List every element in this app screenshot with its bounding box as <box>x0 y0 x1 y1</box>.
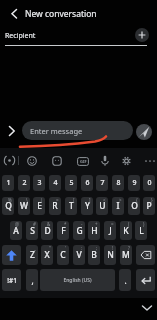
button[interactable]: C <box>57 245 69 265</box>
staticText: ] <box>89 197 91 203</box>
button[interactable] <box>136 124 152 140</box>
staticText: N <box>107 249 114 261</box>
button[interactable]: Enter message <box>22 121 133 140</box>
staticText: Enter message <box>30 126 83 136</box>
button[interactable]: Z <box>26 245 38 265</box>
button[interactable]: !#1 <box>2 269 21 291</box>
staticText: A <box>13 225 19 237</box>
button[interactable]: K <box>120 221 132 240</box>
staticText: W <box>20 200 28 212</box>
button[interactable] <box>2 245 21 265</box>
button[interactable]: B <box>88 245 100 265</box>
button[interactable] <box>4 155 15 166</box>
button[interactable]: W <box>18 197 30 215</box>
staticText: Recipient <box>5 31 36 41</box>
button[interactable]: U <box>96 197 108 215</box>
button[interactable]: X <box>41 245 53 265</box>
button[interactable] <box>136 245 155 265</box>
staticText: P <box>146 200 152 212</box>
staticText: @ <box>15 221 20 227</box>
staticText: * <box>64 221 67 227</box>
button[interactable] <box>100 155 110 167</box>
button[interactable]: . <box>119 269 131 291</box>
staticText: 3 <box>37 178 42 188</box>
staticText: K <box>123 225 129 237</box>
button[interactable]: J <box>104 221 116 240</box>
staticText: = <box>111 221 114 227</box>
staticText: + <box>95 221 98 227</box>
button[interactable]: M <box>120 245 132 265</box>
button[interactable]: 5 <box>65 175 77 191</box>
staticText: 0 <box>147 178 152 188</box>
button[interactable]: V <box>73 245 85 265</box>
staticText: X <box>44 249 50 261</box>
button[interactable]: I <box>112 197 124 215</box>
staticText: U <box>99 200 106 212</box>
button[interactable] <box>135 28 149 42</box>
staticText: English (US) <box>63 277 92 284</box>
staticText: - <box>81 221 83 227</box>
staticText: ( <box>128 221 130 227</box>
staticText: 9 <box>132 178 137 188</box>
staticText: L <box>139 225 144 237</box>
button[interactable]: R <box>49 197 61 215</box>
staticText: = <box>56 197 59 203</box>
staticText: | <box>40 197 43 203</box>
button[interactable]: 2 <box>18 175 30 191</box>
button[interactable]: S <box>26 221 38 240</box>
staticText: E <box>37 200 42 212</box>
button[interactable]: E <box>33 197 45 215</box>
button[interactable]: G <box>73 221 85 240</box>
button[interactable]: 9 <box>128 175 140 191</box>
button[interactable] <box>121 155 132 167</box>
button[interactable]: 1 <box>2 175 14 191</box>
staticText: F <box>61 225 66 237</box>
button[interactable]: 6 <box>81 175 93 191</box>
button[interactable] <box>144 158 156 164</box>
button[interactable]: D <box>41 221 53 240</box>
staticText: . <box>124 275 127 286</box>
staticText: % <box>8 197 12 203</box>
button[interactable]: , <box>26 269 38 291</box>
button[interactable] <box>27 156 37 166</box>
staticText: } <box>151 197 153 203</box>
staticText: " <box>49 245 51 251</box>
staticText: ? <box>128 245 130 251</box>
staticText: # <box>33 221 36 227</box>
staticText: G <box>76 225 83 237</box>
staticText: 6 <box>85 178 90 188</box>
button[interactable]: P <box>143 197 155 215</box>
staticText: 1 <box>6 178 11 188</box>
staticText: M <box>122 249 130 261</box>
button[interactable]: F <box>57 221 69 240</box>
button[interactable]: A <box>10 221 22 240</box>
staticText: !#1 <box>7 276 17 285</box>
staticText: V <box>76 249 82 261</box>
button[interactable] <box>4 7 22 21</box>
staticText: R <box>52 200 58 212</box>
button[interactable] <box>140 303 154 313</box>
button[interactable]: 8 <box>112 175 124 191</box>
button[interactable]: 7 <box>96 175 108 191</box>
button[interactable]: N <box>104 245 116 265</box>
staticText: T <box>69 200 74 212</box>
button[interactable]: 4 <box>49 175 61 191</box>
button[interactable]: Y <box>81 197 93 215</box>
button[interactable]: T <box>65 197 77 215</box>
staticText: & <box>47 221 51 227</box>
button[interactable]: Q <box>2 197 14 215</box>
button[interactable] <box>6 125 18 137</box>
staticText: : <box>81 245 83 251</box>
button[interactable]: 3 <box>33 175 45 191</box>
button[interactable]: L <box>135 221 147 240</box>
staticText: 4 <box>53 178 58 188</box>
staticText: , <box>31 275 34 286</box>
button[interactable] <box>136 269 155 291</box>
button[interactable] <box>52 156 62 166</box>
button[interactable]: 0 <box>143 175 155 191</box>
staticText: [ <box>73 197 75 203</box>
button[interactable]: English (US) <box>40 269 115 291</box>
button[interactable]: GIF <box>77 157 89 166</box>
button[interactable]: H <box>88 221 100 240</box>
button[interactable]: O <box>128 197 140 215</box>
